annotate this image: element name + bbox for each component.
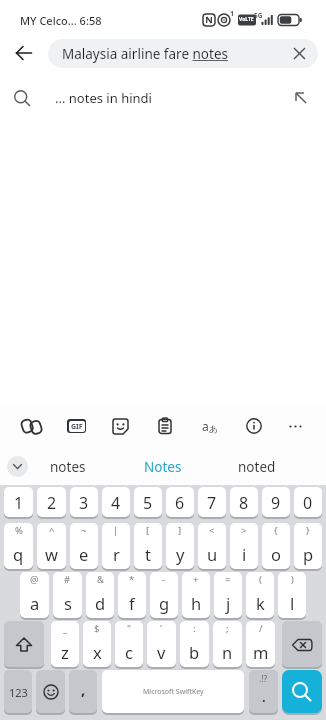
- button[interactable]: [10, 39, 38, 67]
- button[interactable]: [7, 456, 28, 477]
- staticText: あ: [209, 423, 219, 434]
- staticText: 5: [143, 492, 153, 514]
- button[interactable]: _: [51, 621, 79, 668]
- staticText: -: [162, 573, 166, 586]
- staticText: [: [146, 524, 150, 537]
- staticText: m: [253, 641, 269, 663]
- staticText: 1: [14, 492, 24, 514]
- staticText: Microsoft SwiftKey: [143, 687, 204, 697]
- button[interactable]: ... notes in hindi: [0, 72, 326, 124]
- button[interactable]: =: [214, 572, 242, 619]
- button[interactable]: noted: [218, 448, 295, 485]
- staticText: a: [30, 592, 40, 614]
- staticText: l: [290, 592, 295, 614]
- staticText: 8: [239, 492, 249, 514]
- button[interactable]: 8: [230, 487, 258, 518]
- button[interactable]: .!?: [249, 670, 278, 714]
- button[interactable]: ': [147, 621, 176, 668]
- staticText: n: [222, 641, 233, 663]
- button[interactable]: ~: [70, 523, 98, 570]
- staticText: y: [176, 543, 185, 565]
- staticText: =: [225, 573, 231, 586]
- button[interactable]: :: [180, 621, 209, 668]
- staticText: notes: [50, 458, 86, 476]
- staticText: a: [202, 418, 209, 434]
- button[interactable]: 0: [294, 487, 322, 518]
- button[interactable]: >: [230, 523, 258, 570]
- staticText: q: [13, 543, 24, 565]
- button[interactable]: [239, 411, 269, 441]
- button[interactable]: ^: [37, 523, 66, 570]
- staticText: 7: [207, 492, 217, 514]
- staticText: (: [259, 573, 262, 586]
- button[interactable]: notes: [28, 448, 107, 485]
- button[interactable]: a: [195, 411, 225, 441]
- button[interactable]: 1: [4, 487, 33, 518]
- button[interactable]: 2: [37, 487, 66, 518]
- button[interactable]: %: [4, 523, 33, 570]
- staticText: 4: [111, 492, 121, 514]
- staticText: *: [129, 573, 135, 586]
- button[interactable]: 7: [198, 487, 226, 518]
- button[interactable]: /: [246, 621, 275, 668]
- button[interactable]: -: [150, 572, 178, 619]
- button[interactable]: <: [198, 523, 226, 570]
- button[interactable]: [36, 670, 65, 714]
- staticText: c: [125, 641, 133, 663]
- button[interactable]: [282, 670, 322, 714]
- staticText: w: [45, 543, 58, 565]
- staticText: ~: [81, 524, 87, 537]
- staticText: ': [160, 622, 163, 635]
- button[interactable]: [150, 411, 180, 441]
- button[interactable]: [4, 621, 44, 668]
- staticText: MY Celco... 6:58: [20, 13, 102, 28]
- staticText: VoLTE: [239, 16, 254, 23]
- button[interactable]: ;: [213, 621, 242, 668]
- button[interactable]: 5: [134, 487, 162, 518]
- staticText: _: [63, 622, 68, 635]
- staticText: x: [93, 641, 102, 663]
- button[interactable]: [282, 621, 322, 668]
- staticText: .!?: [259, 673, 268, 685]
- button[interactable]: 3: [70, 487, 98, 518]
- staticText: s: [64, 592, 72, 614]
- staticText: 1: [230, 9, 235, 19]
- button[interactable]: ": [115, 621, 143, 668]
- staticText: 6: [175, 492, 185, 514]
- button[interactable]: +: [182, 572, 210, 619]
- button[interactable]: [105, 411, 135, 441]
- button[interactable]: 9: [262, 487, 290, 518]
- button[interactable]: ]: [166, 523, 194, 570]
- button[interactable]: 123: [4, 670, 32, 714]
- staticText: .: [262, 688, 266, 706]
- button[interactable]: |: [102, 523, 130, 570]
- button[interactable]: #: [53, 572, 82, 619]
- button[interactable]: &: [86, 572, 114, 619]
- button[interactable]: 4: [102, 487, 130, 518]
- button[interactable]: ,: [69, 670, 97, 714]
- button[interactable]: GIF: [61, 411, 91, 441]
- button[interactable]: 6: [166, 487, 194, 518]
- button[interactable]: [16, 411, 46, 441]
- button[interactable]: [284, 39, 314, 68]
- staticText: p: [303, 543, 314, 565]
- staticText: t: [145, 543, 151, 565]
- button[interactable]: [284, 415, 306, 437]
- staticText: d: [95, 592, 106, 614]
- button[interactable]: $: [83, 621, 111, 668]
- staticText: ": [127, 622, 131, 635]
- staticText: GIF: [71, 422, 83, 432]
- button[interactable]: ): [278, 572, 306, 619]
- button[interactable]: *: [118, 572, 146, 619]
- staticText: noted: [238, 458, 276, 476]
- button[interactable]: (: [246, 572, 274, 619]
- staticText: b: [189, 641, 200, 663]
- button[interactable]: Notes: [107, 448, 218, 485]
- button[interactable]: @: [20, 572, 49, 619]
- button[interactable]: Malaysia airline fare notes: [48, 39, 318, 68]
- button[interactable]: [: [134, 523, 162, 570]
- button[interactable]: {: [262, 523, 290, 570]
- button[interactable]: }: [294, 523, 322, 570]
- button[interactable]: Microsoft SwiftKey: [102, 670, 244, 714]
- staticText: 9: [271, 492, 281, 514]
